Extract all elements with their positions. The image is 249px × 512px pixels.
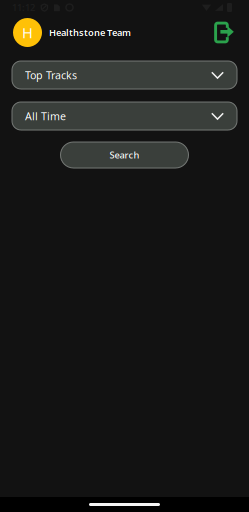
staticText: Healthstone Team xyxy=(49,26,131,39)
button[interactable]: Search xyxy=(60,142,188,168)
staticText: All Time xyxy=(25,109,66,123)
staticText: Top Tracks xyxy=(25,68,77,82)
staticText: H xyxy=(22,23,33,42)
staticText: Search xyxy=(109,149,139,161)
staticText: 11:12 xyxy=(12,1,35,14)
button[interactable]: Log out xyxy=(214,21,234,43)
button[interactable]: Top Tracks xyxy=(12,61,237,89)
button[interactable]: All Time xyxy=(12,102,237,130)
